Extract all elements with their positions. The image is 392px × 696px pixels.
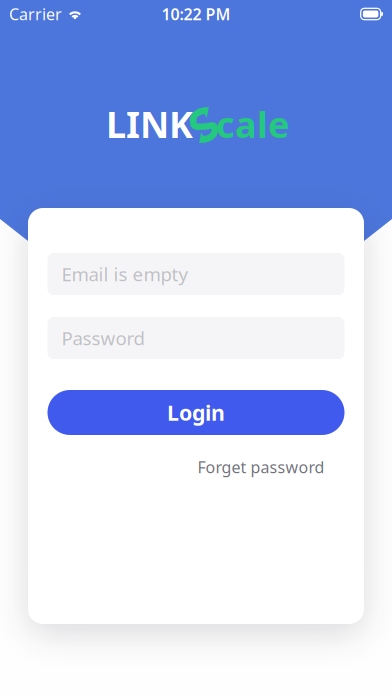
staticText: Email is empty — [61, 262, 188, 286]
staticText: Password — [61, 326, 144, 350]
staticText: cale — [216, 100, 289, 148]
staticText: Carrier — [9, 3, 62, 25]
button[interactable]: Forget password — [47, 454, 344, 480]
staticText: Login — [167, 398, 225, 427]
staticText: 10:22 PM — [161, 3, 230, 25]
staticText: Forget password — [197, 456, 324, 478]
button[interactable]: Login — [47, 390, 344, 435]
staticText: LINK — [106, 100, 193, 148]
